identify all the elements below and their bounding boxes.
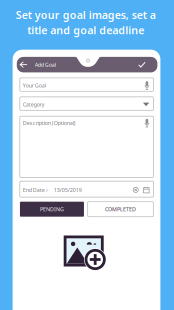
staticText: COMPLETED [105,206,136,213]
staticText: Your Goal [23,82,46,89]
staticText: Set your goal images, set a [16,8,156,22]
staticText: End Date :- 13/05/2019 [23,186,82,193]
button[interactable]: Back [17,57,30,72]
staticText: PENDING [40,206,64,213]
button[interactable]: COMPLETED [88,202,153,217]
staticText: Description (Optional) [23,119,76,126]
staticText: title and goal deadline [27,23,144,37]
staticText: Category [23,101,45,108]
button[interactable]: PENDING [20,202,84,217]
staticText: Add Goal [35,61,56,68]
button[interactable]: Save [135,57,148,72]
button[interactable]: Add photo [64,235,105,267]
